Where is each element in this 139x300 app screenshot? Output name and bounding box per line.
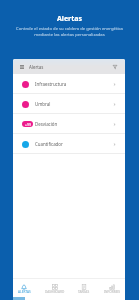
button[interactable]: TAREAS: [70, 279, 98, 297]
button[interactable]: Menu: [18, 63, 26, 71]
staticText: Alertas: [57, 14, 82, 24]
staticText: Cuantificador: [35, 141, 63, 147]
staticText: DASHBOARD: [45, 290, 65, 294]
button[interactable]: DASHBOARD: [41, 279, 69, 297]
staticText: INFORMES: [104, 290, 121, 294]
staticText: Umbral: [35, 101, 51, 107]
button[interactable]: Umbral: [13, 94, 125, 114]
staticText: TAREAS: [78, 290, 90, 294]
button[interactable]: Cuantificador: [13, 134, 125, 154]
staticText: Controle el estado de su caldera de gest…: [16, 26, 123, 37]
button[interactable]: INFORMES: [98, 279, 125, 297]
staticText: Alertas: [29, 64, 44, 70]
button[interactable]: ALERTAS: [13, 279, 38, 297]
staticText: ALERTAS: [18, 290, 31, 294]
staticText: Desviación: [35, 121, 58, 127]
staticText: +99: [25, 122, 31, 127]
button[interactable]: Infraestructura: [13, 74, 125, 94]
staticText: Infraestructura: [35, 81, 67, 87]
button[interactable]: Filter: [111, 63, 119, 71]
button[interactable]: +99: [13, 114, 125, 134]
